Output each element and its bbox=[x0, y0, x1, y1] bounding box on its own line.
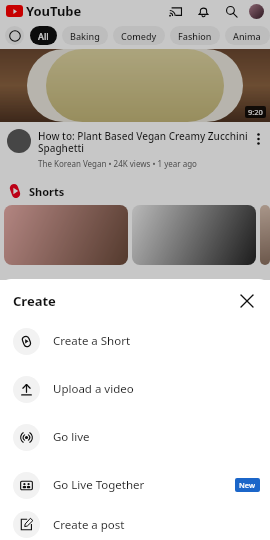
button[interactable]: Search bbox=[223, 3, 239, 19]
button[interactable] bbox=[132, 205, 256, 265]
button[interactable]: Animation bbox=[225, 26, 270, 45]
button[interactable]: Account bbox=[249, 4, 264, 19]
button[interactable]: Go Live Together bbox=[0, 461, 270, 509]
staticText: Upload a video bbox=[53, 381, 134, 397]
staticText: Go Live Together bbox=[53, 477, 145, 493]
button[interactable]: Fashion bbox=[170, 26, 220, 45]
button[interactable]: Explore bbox=[5, 26, 24, 45]
staticText: Fashion bbox=[178, 30, 212, 42]
staticText: 9:20 bbox=[248, 107, 263, 117]
staticText: Animation bbox=[233, 30, 262, 42]
staticText: Baking bbox=[70, 30, 100, 42]
button[interactable]: Close bbox=[234, 288, 260, 314]
button[interactable]: Cast bbox=[167, 3, 183, 19]
staticText: Create a post bbox=[53, 517, 125, 533]
staticText: YouTube bbox=[26, 2, 82, 20]
button[interactable]: All bbox=[30, 26, 57, 45]
button[interactable]: Create a post bbox=[0, 509, 270, 540]
button[interactable]: How to: Plant Based Vegan Creamy Zucchin… bbox=[0, 122, 270, 177]
staticText: All bbox=[38, 30, 49, 42]
staticText: The Korean Vegan • 24K views • 1 year ag… bbox=[38, 158, 197, 169]
staticText: How to: Plant Based Vegan Creamy Zucchin… bbox=[38, 129, 251, 155]
staticText: New bbox=[239, 480, 256, 490]
button[interactable]: Notifications bbox=[195, 3, 211, 19]
button[interactable]: More options bbox=[251, 129, 265, 149]
staticText: Go live bbox=[53, 429, 90, 445]
staticText: Comedy bbox=[121, 30, 157, 42]
staticText: Create a Short bbox=[53, 333, 131, 349]
button[interactable]: Go live bbox=[0, 413, 270, 461]
button[interactable]: Upload a video bbox=[0, 365, 270, 413]
button[interactable]: Comedy bbox=[113, 26, 165, 45]
button[interactable] bbox=[260, 205, 270, 265]
button[interactable] bbox=[4, 205, 128, 265]
button[interactable]: YouTube bbox=[6, 5, 23, 17]
button[interactable]: Baking bbox=[62, 26, 108, 45]
staticText: Create bbox=[13, 292, 56, 310]
button[interactable]: Create a Short bbox=[0, 317, 270, 365]
staticText: Shorts bbox=[29, 184, 65, 199]
